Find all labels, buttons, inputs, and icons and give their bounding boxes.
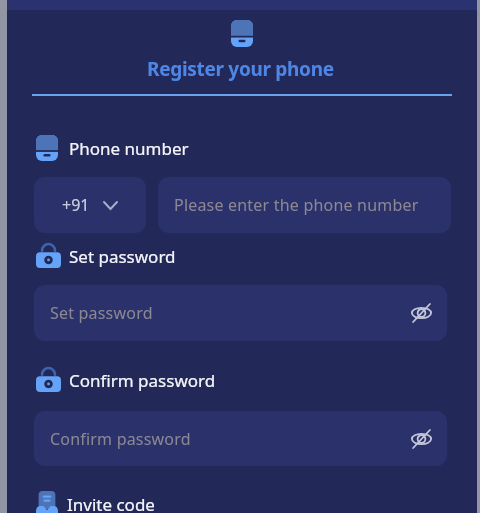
staticText: Please enter the phone number bbox=[174, 194, 419, 216]
staticText: Set password bbox=[69, 245, 176, 268]
staticText: +91 bbox=[62, 194, 90, 216]
staticText: Phone number bbox=[69, 137, 189, 160]
staticText: Invite code bbox=[67, 493, 155, 513]
staticText: Confirm password bbox=[69, 369, 216, 392]
staticText: Register your phone bbox=[147, 56, 334, 82]
staticText: Set password bbox=[50, 302, 153, 324]
button[interactable] bbox=[411, 303, 432, 323]
button[interactable] bbox=[411, 429, 432, 449]
button[interactable]: Confirm password bbox=[34, 411, 447, 466]
button[interactable]: Please enter the phone number bbox=[158, 177, 451, 233]
staticText: Confirm password bbox=[50, 428, 191, 450]
button[interactable]: +91 bbox=[34, 177, 146, 233]
button[interactable]: Set password bbox=[34, 285, 447, 341]
